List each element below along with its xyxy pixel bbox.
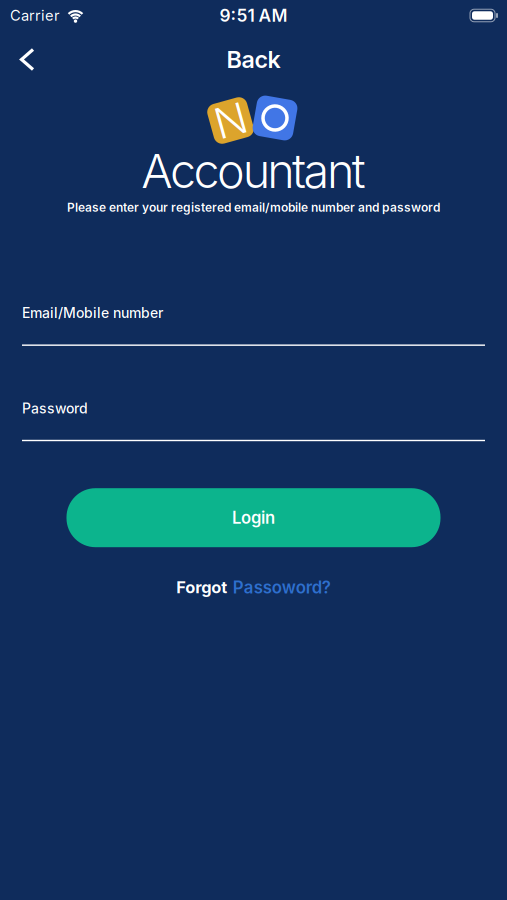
staticText: Please enter your registered email/mobil… (67, 200, 440, 214)
staticText: Login (232, 508, 275, 528)
staticText: Password (22, 400, 88, 417)
staticText: Accountant (141, 143, 366, 199)
button[interactable]: Forgot (176, 577, 331, 597)
staticText: 9:51 AM (219, 5, 287, 26)
staticText: Email/Mobile number (22, 304, 163, 321)
staticText: Passoword? (233, 577, 331, 597)
staticText: Forgot (176, 577, 227, 597)
button[interactable]: Login (66, 488, 440, 547)
staticText: N (214, 95, 246, 146)
staticText: Carrier (10, 7, 60, 24)
button[interactable]: Back (0, 40, 36, 79)
button[interactable]: Email/Mobile number (22, 304, 485, 346)
button[interactable]: Password (22, 400, 485, 441)
staticText: Back (226, 45, 280, 74)
